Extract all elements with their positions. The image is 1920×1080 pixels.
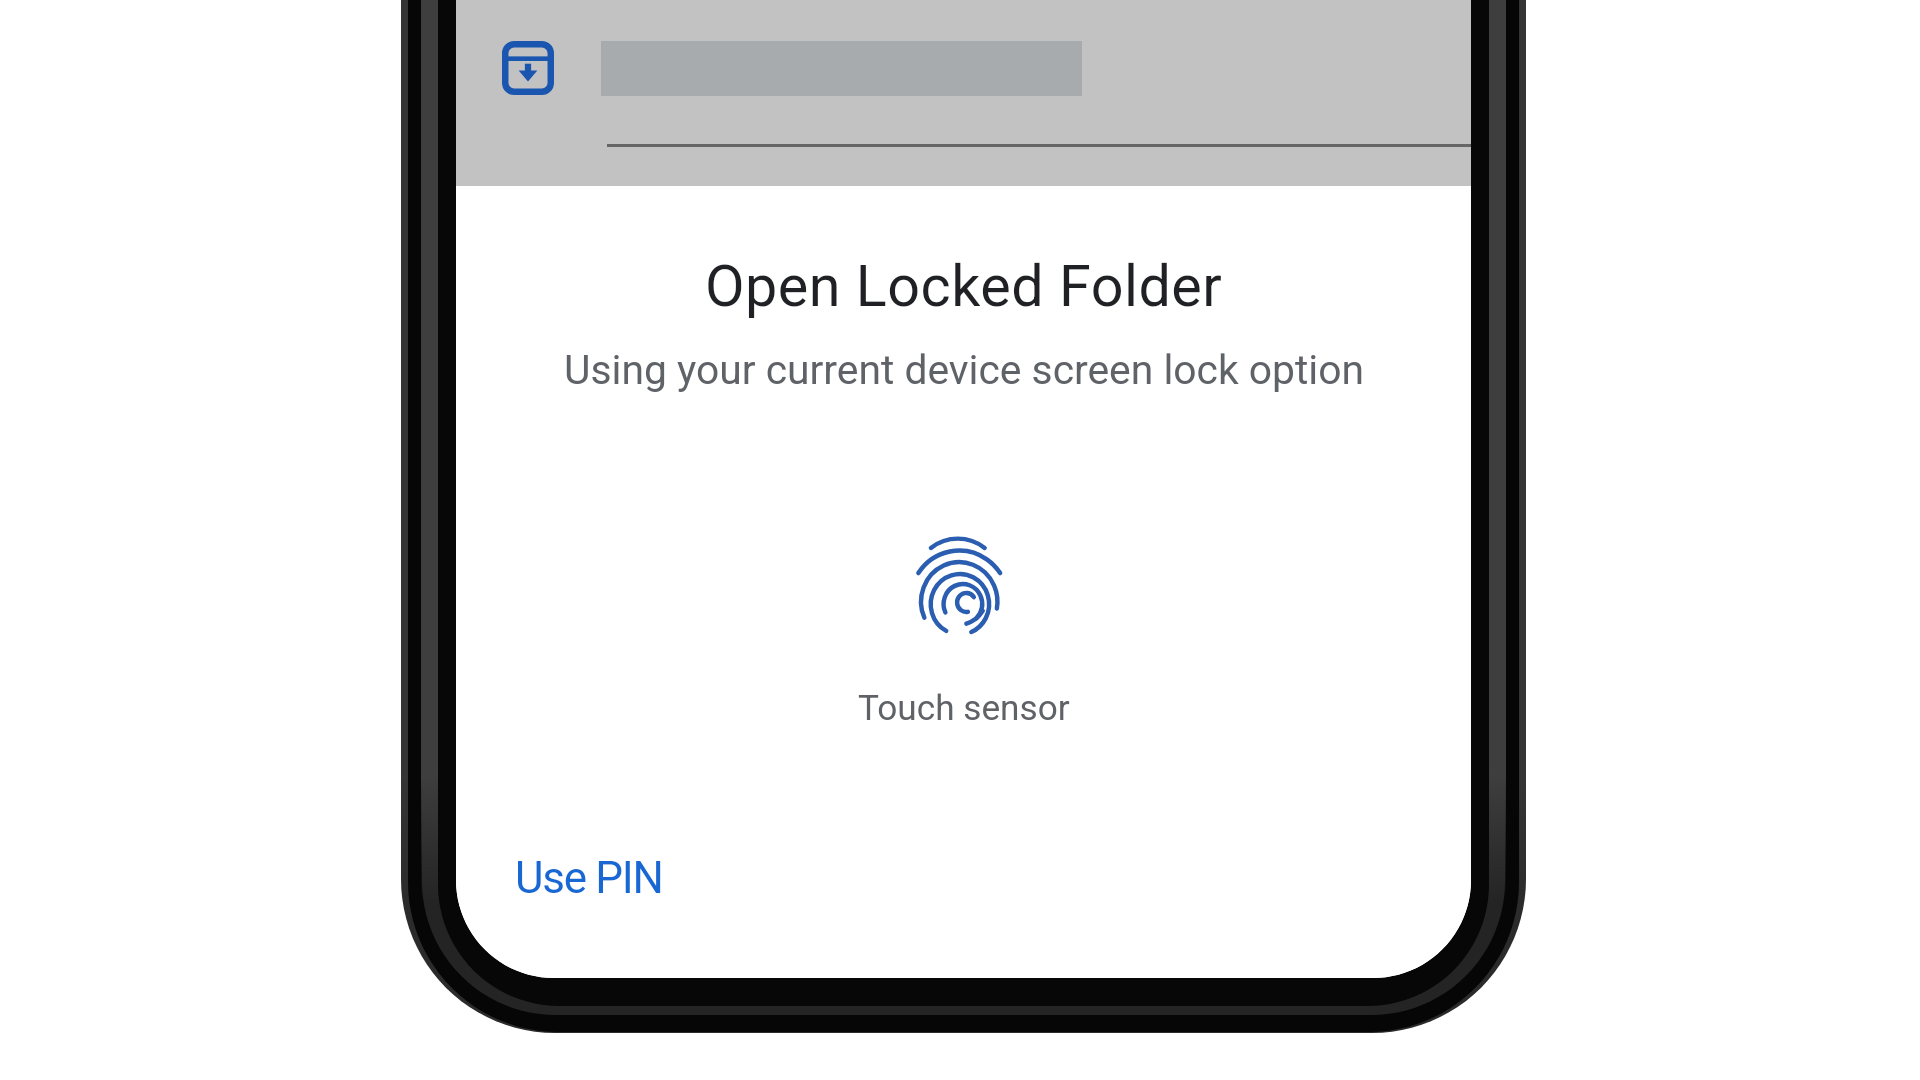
staticText: Open Locked Folder <box>705 253 1223 320</box>
button[interactable]: Fingerprint sensor <box>917 536 1004 634</box>
staticText: Touch sensor <box>858 687 1070 728</box>
button[interactable]: Archive <box>502 41 554 95</box>
button[interactable]: Use PIN <box>499 842 679 914</box>
staticText: Use PIN <box>515 852 663 904</box>
staticText: Using your current device screen lock op… <box>564 346 1364 394</box>
